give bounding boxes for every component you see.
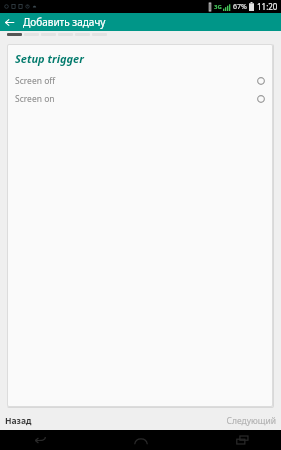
button[interactable]: Назад bbox=[0, 13, 18, 31]
staticText: Screen off bbox=[15, 75, 257, 87]
staticText: 67% bbox=[233, 2, 247, 12]
button[interactable]: Recent apps bbox=[227, 430, 257, 450]
button[interactable]: Screen on bbox=[7, 90, 273, 108]
staticText: Setup trigger bbox=[15, 51, 84, 66]
button[interactable]: Home bbox=[126, 430, 156, 450]
staticText: Следующий bbox=[226, 415, 276, 427]
staticText: Добавить задачу bbox=[23, 15, 106, 29]
staticText: Screen on bbox=[15, 93, 257, 105]
staticText: Назад bbox=[5, 415, 32, 427]
button[interactable]: Назад bbox=[0, 412, 38, 430]
staticText: 11:20 bbox=[257, 1, 278, 12]
staticText: 3G bbox=[214, 3, 222, 11]
button[interactable]: Следующий bbox=[220, 412, 281, 430]
button[interactable]: Screen off bbox=[7, 72, 273, 90]
button[interactable]: Back bbox=[24, 430, 54, 450]
